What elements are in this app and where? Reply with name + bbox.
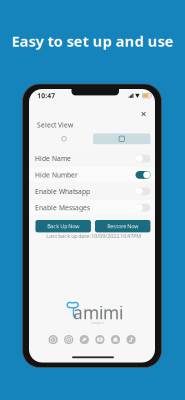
button[interactable]: List view [35,133,93,144]
button[interactable]: Restore Now [95,220,150,232]
staticText: amimi [73,301,123,324]
button[interactable]: Enable Messages [29,199,155,216]
button[interactable]: Hide Name [29,150,155,167]
button[interactable]: Twitter [80,335,89,344]
button[interactable]: Instagram [64,335,73,344]
button[interactable]: Hide Number [29,167,155,183]
button[interactable]: Enable Whatsapp [29,183,155,199]
button[interactable]: Snapchat [111,335,120,344]
staticText: Enable Messages [35,203,90,212]
staticText: Restore Now [107,223,138,230]
staticText: Hide Name [35,154,71,163]
staticText: Easy to set up and use [11,31,173,51]
button[interactable]: Grid view [93,133,150,144]
button[interactable]: Close [138,108,149,119]
button[interactable]: YouTube [95,335,104,344]
staticText: Enable Whatsapp [35,187,90,196]
staticText: PROJECTS [91,321,103,325]
button[interactable]: WhatsApp [48,335,58,344]
staticText: Last back up date: 10/09/2022,10:47PM [46,232,141,240]
staticText: 10:47 [37,91,55,100]
staticText: Select View [37,120,73,129]
button[interactable]: TikTok [126,335,136,344]
button[interactable]: Back Up Now [35,220,91,232]
staticText: Back Up Now [47,223,79,230]
staticText: Hide Number [35,170,78,179]
